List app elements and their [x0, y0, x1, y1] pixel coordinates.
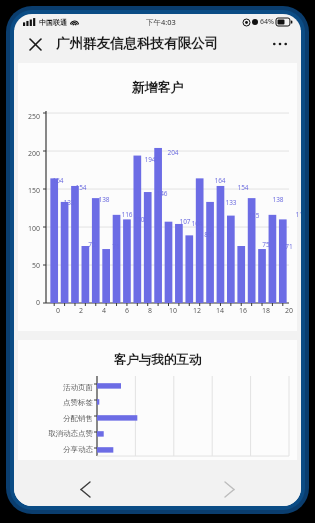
staticText: 12: [189, 306, 205, 316]
staticText: 客户与我的互动: [18, 352, 297, 368]
staticText: 16: [235, 306, 251, 316]
staticText: 20: [281, 306, 297, 316]
staticText: 50: [20, 261, 40, 271]
staticText: 100: [20, 224, 40, 234]
staticText: 0: [50, 306, 66, 316]
staticText: 中国联通: [39, 18, 67, 27]
staticText: 200: [20, 149, 40, 159]
staticText: 116: [292, 210, 301, 219]
staticText: 116: [118, 210, 136, 219]
staticText: 138: [95, 195, 113, 204]
staticText: 4: [96, 306, 112, 316]
staticText: 150: [20, 186, 40, 196]
staticText: 取消动态点赞: [48, 429, 93, 438]
staticText: 107: [176, 217, 194, 226]
staticText: 0: [20, 298, 40, 308]
staticText: 14: [212, 306, 228, 316]
staticText: 115: [245, 211, 263, 220]
staticText: 6: [119, 306, 135, 316]
staticText: 18: [258, 306, 274, 316]
staticText: 2: [73, 306, 89, 316]
staticText: 164: [211, 176, 229, 185]
staticText: 164: [49, 176, 67, 185]
staticText: 点赞标签: [63, 398, 93, 407]
staticText: 89: [199, 230, 217, 239]
button[interactable]: 客户与我的互动: [18, 340, 297, 460]
staticText: 250: [20, 112, 40, 122]
staticText: 8: [142, 306, 158, 316]
staticText: 110: [130, 215, 148, 224]
button[interactable]: Back: [14, 472, 157, 506]
staticText: 204: [164, 148, 182, 157]
staticText: 71: [280, 242, 298, 251]
staticText: 10: [165, 306, 181, 316]
staticText: 活动页面: [63, 383, 93, 392]
staticText: 104: [188, 219, 206, 228]
staticText: 138: [269, 195, 287, 204]
staticText: 75: [257, 240, 275, 249]
staticText: 133: [60, 198, 78, 207]
staticText: 75: [83, 240, 101, 249]
staticText: 71: [107, 242, 125, 251]
staticText: 下午4:03: [146, 17, 176, 27]
staticText: 154: [72, 183, 90, 192]
button[interactable]: Forward: [157, 472, 301, 506]
staticText: 分配销售: [63, 414, 93, 423]
staticText: 146: [153, 189, 171, 198]
staticText: 194: [141, 155, 159, 164]
staticText: 64%: [260, 17, 274, 27]
staticText: 分享动态: [63, 445, 93, 454]
button[interactable]: 新增客户: [18, 63, 297, 331]
staticText: 133: [222, 198, 240, 207]
button[interactable]: Close: [24, 33, 46, 55]
button[interactable]: More options: [269, 33, 291, 55]
staticText: 广州群友信息科技有限公司: [56, 35, 218, 52]
staticText: 新增客户: [18, 79, 297, 95]
staticText: 154: [234, 183, 252, 192]
